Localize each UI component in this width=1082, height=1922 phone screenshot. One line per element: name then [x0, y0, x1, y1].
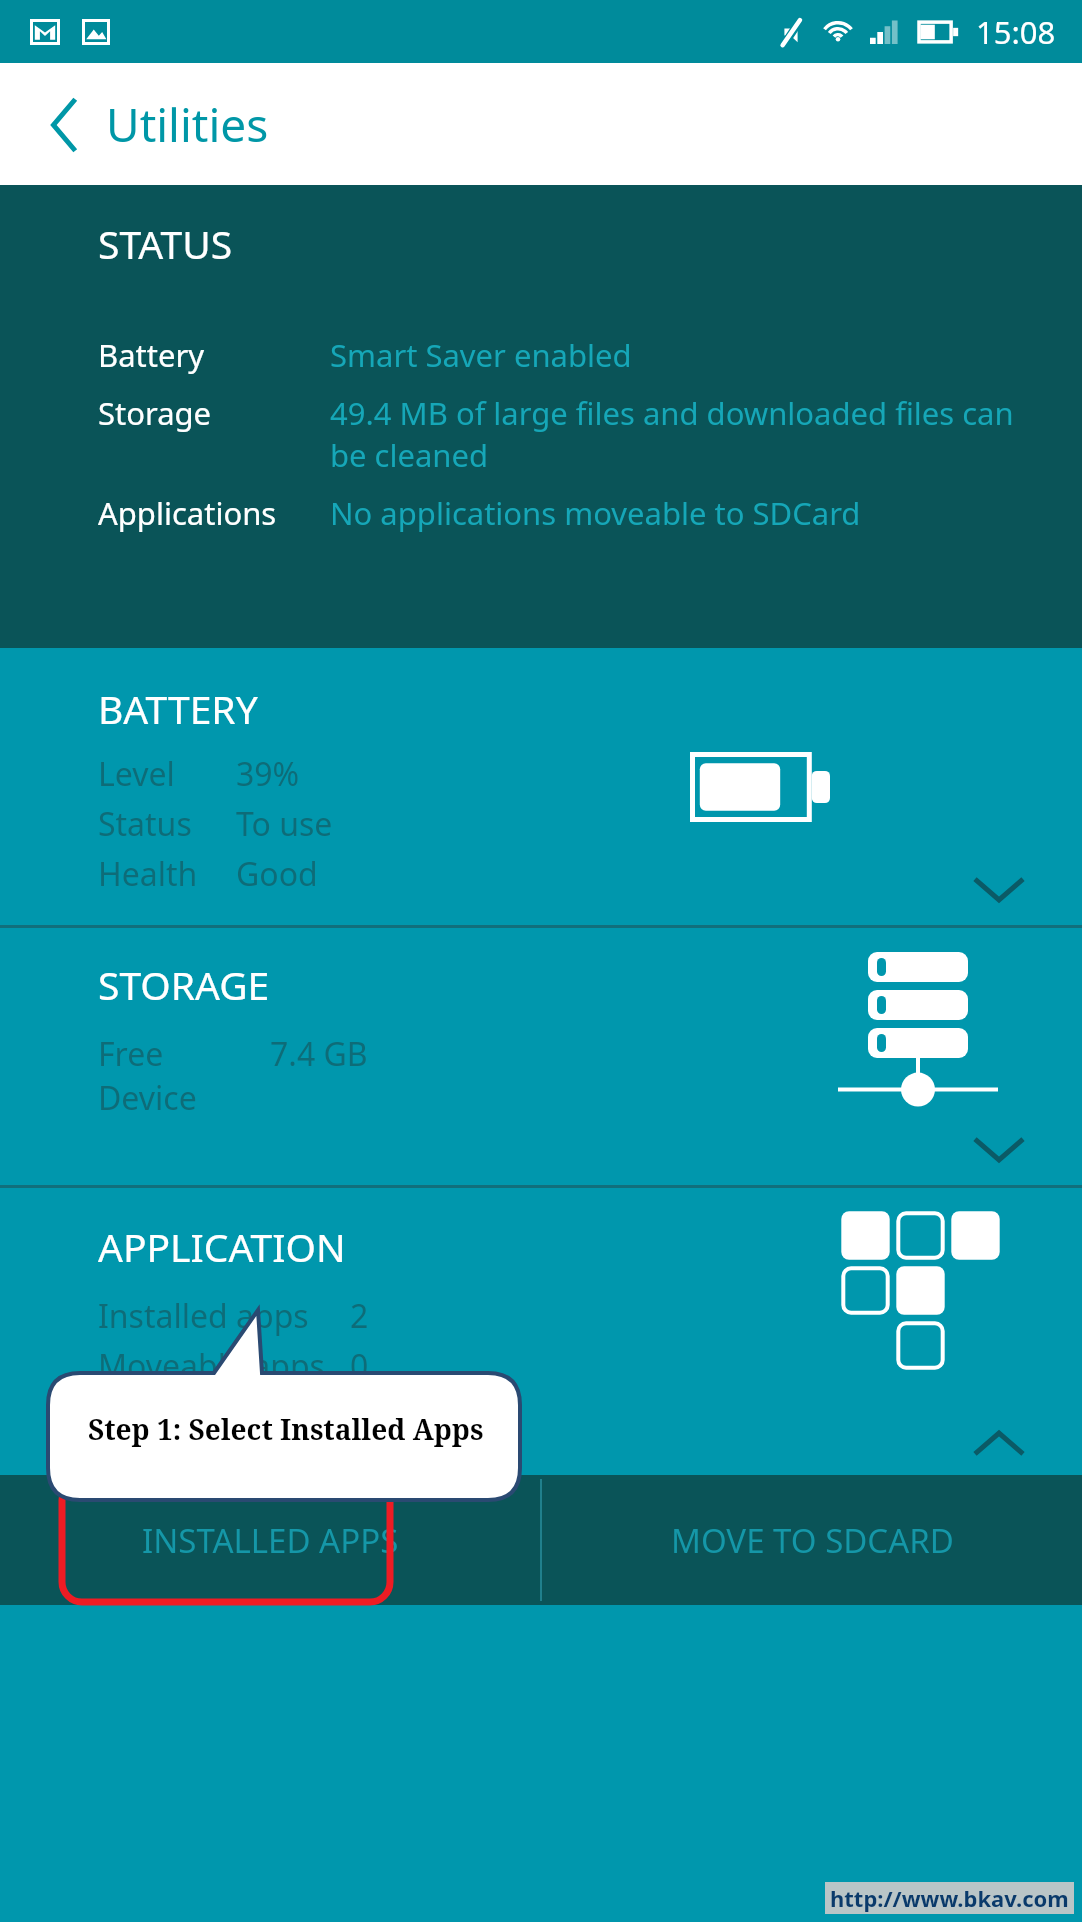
- staticText: Health: [98, 852, 236, 896]
- staticText: 2: [350, 1294, 369, 1338]
- button[interactable]: MOVE TO SDCARD: [542, 1475, 1082, 1605]
- button[interactable]: Back: [36, 96, 94, 154]
- staticText: Level: [98, 752, 236, 796]
- staticText: Status: [98, 802, 236, 846]
- staticText: BATTERY: [98, 682, 258, 735]
- staticText: 7.4 GB: [270, 1032, 368, 1076]
- staticText: 39%: [236, 752, 300, 796]
- button[interactable]: Collapse: [964, 1419, 1034, 1467]
- staticText: No applications moveable to SDCard: [330, 492, 861, 534]
- button[interactable]: Expand: [964, 865, 1034, 913]
- staticText: Smart Saver enabled: [330, 334, 632, 376]
- staticText: 0: [350, 1344, 369, 1388]
- staticText: Storage: [98, 392, 330, 434]
- staticText: MOVE TO SDCARD: [671, 1518, 954, 1563]
- staticText: 49.4 MB of large files and downloaded fi…: [330, 392, 1038, 476]
- staticText: STORAGE: [98, 958, 270, 1011]
- button[interactable]: INSTALLED APPS: [0, 1475, 540, 1605]
- staticText: APPLICATION: [98, 1220, 346, 1273]
- staticText: Applications: [98, 492, 330, 534]
- staticText: Good: [236, 852, 318, 896]
- staticText: Installed apps: [98, 1294, 350, 1338]
- staticText: 15:08: [976, 11, 1056, 53]
- button[interactable]: APPLICATION: [0, 1188, 1082, 1475]
- button[interactable]: Expand: [964, 1125, 1034, 1173]
- staticText: To use: [236, 802, 333, 846]
- staticText: Utilities: [106, 93, 269, 156]
- button[interactable]: BATTERY: [0, 648, 1082, 925]
- staticText: Step 1: Select Installed Apps: [88, 1410, 484, 1448]
- staticText: Moveable apps: [98, 1344, 350, 1388]
- staticText: http://www.bkav.com: [830, 1883, 1069, 1913]
- staticText: INSTALLED APPS: [142, 1518, 399, 1563]
- staticText: Free Device: [98, 1032, 270, 1120]
- staticText: Battery: [98, 334, 330, 376]
- button[interactable]: STATUS: [0, 185, 1082, 648]
- button[interactable]: STORAGE: [0, 928, 1082, 1185]
- staticText: STATUS: [98, 217, 233, 270]
